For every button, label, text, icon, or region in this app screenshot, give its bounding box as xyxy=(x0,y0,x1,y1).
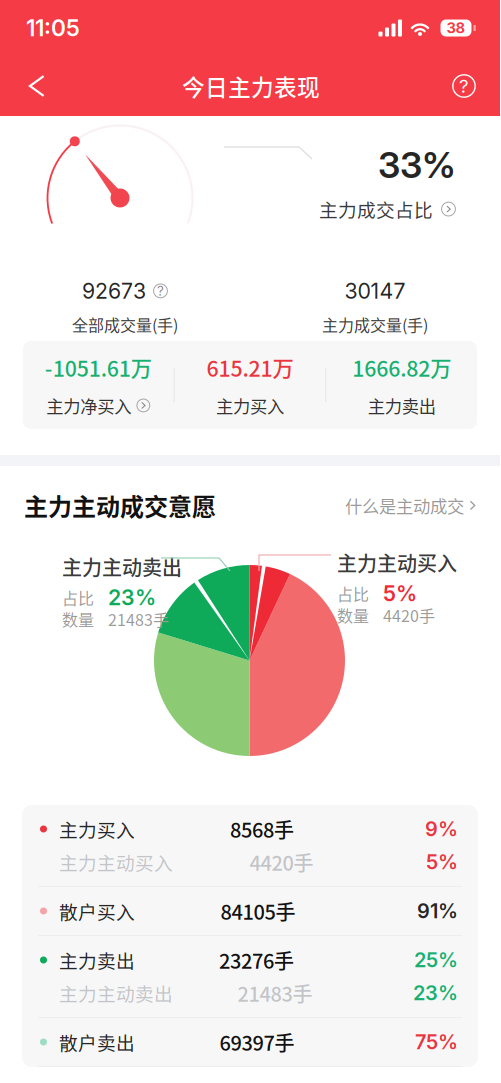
staticText: 主力净买入 xyxy=(46,393,131,418)
staticText: 5% xyxy=(383,581,417,606)
staticText: ? xyxy=(459,75,469,97)
button[interactable]: 什么是主动成交 xyxy=(345,493,476,518)
staticText: 25% xyxy=(414,948,458,972)
button[interactable]: Back xyxy=(14,63,60,109)
staticText: 主力主动成交意愿 xyxy=(24,488,216,523)
staticText: 主力成交占比 xyxy=(319,196,433,223)
staticText: 23% xyxy=(108,585,156,610)
staticText: 数量 xyxy=(62,607,94,631)
button[interactable]: Help xyxy=(442,64,486,108)
staticText: 38 xyxy=(446,19,465,37)
staticText: 主力卖出 xyxy=(368,393,436,418)
staticText: 散户卖出 xyxy=(59,1028,135,1055)
staticText: 91% xyxy=(417,899,458,923)
staticText: 主力买入 xyxy=(216,393,284,418)
staticText: 9% xyxy=(425,817,458,841)
staticText: 4420手 xyxy=(383,603,435,627)
staticText: 占比 xyxy=(62,586,94,609)
staticText: 69397手 xyxy=(219,1027,294,1056)
staticText: 1666.82万 xyxy=(352,352,451,383)
button[interactable]: 散户卖出 xyxy=(22,1018,478,1066)
staticText: 占比 xyxy=(337,582,369,605)
staticText: 主力成交量(手) xyxy=(322,313,428,336)
staticText: 5% xyxy=(426,850,458,874)
staticText: 主力卖出 xyxy=(59,946,135,973)
staticText: 30147 xyxy=(344,278,405,304)
button[interactable]: 散户买入 xyxy=(22,887,478,935)
staticText: 主力主动买入 xyxy=(337,548,457,577)
staticText: 23% xyxy=(413,981,458,1005)
staticText: 主力主动卖出 xyxy=(59,979,173,1006)
staticText: 21483手 xyxy=(108,607,169,631)
staticText: ? xyxy=(157,283,164,299)
staticText: 主力主动买入 xyxy=(59,848,173,875)
staticText: 92673 xyxy=(82,278,146,304)
staticText: 8568手 xyxy=(230,814,294,843)
staticText: 今日主力表现 xyxy=(182,70,320,102)
staticText: 33% xyxy=(378,143,456,187)
staticText: 全部成交量(手) xyxy=(72,313,178,336)
staticText: 什么是主动成交 xyxy=(345,493,464,518)
staticText: 4420手 xyxy=(249,847,313,876)
button[interactable]: 主力买入 xyxy=(22,805,478,886)
staticText: 11:05 xyxy=(26,14,80,42)
staticText: -1051.61万 xyxy=(45,352,152,383)
staticText: 散户买入 xyxy=(59,897,135,924)
staticText: 主力买入 xyxy=(59,815,135,842)
button[interactable]: 主力卖出 xyxy=(22,936,478,1017)
staticText: 主力主动卖出 xyxy=(62,552,182,581)
staticText: 84105手 xyxy=(220,896,295,925)
staticText: 23276手 xyxy=(219,945,294,974)
staticText: 615.21万 xyxy=(206,352,293,383)
staticText: 数量 xyxy=(337,603,369,627)
staticText: 21483手 xyxy=(237,978,312,1007)
staticText: 75% xyxy=(415,1030,458,1054)
